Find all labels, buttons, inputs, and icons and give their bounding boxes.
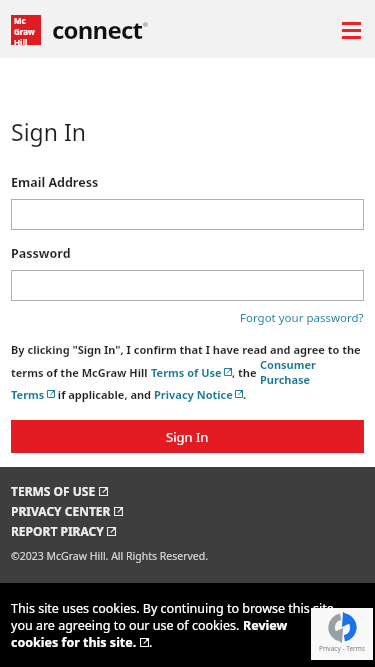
- staticText: Mc: [14, 15, 26, 26]
- button[interactable]: REPORT PIRACY: [11, 521, 116, 541]
- button[interactable]: TERMS OF USE: [11, 481, 108, 501]
- button[interactable]: McGraw Hill Connect home: [11, 13, 148, 46]
- staticText: This site uses cookies. By continuing to…: [11, 600, 334, 617]
- button[interactable]: PRIVACY CENTER: [11, 501, 123, 521]
- staticText: ©2023 McGraw Hill. All Rights Reserved.: [11, 549, 209, 563]
- staticText: cookies for this site.: [11, 634, 137, 651]
- staticText: ®: [143, 21, 148, 29]
- staticText: Privacy - Terms: [319, 644, 365, 653]
- staticText: Review: [243, 617, 288, 634]
- button[interactable]: reCAPTCHA Privacy and Terms: [311, 608, 373, 660]
- button[interactable]: [11, 270, 364, 301]
- staticText: By clicking "Sign In", I confirm that I …: [11, 342, 361, 357]
- button[interactable]: Menu: [338, 17, 364, 43]
- staticText: , the: [232, 365, 260, 380]
- button[interactable]: Privacy Notice: [154, 387, 233, 402]
- staticText: REPORT PIRACY: [11, 523, 104, 539]
- staticText: PRIVACY CENTER: [11, 503, 111, 519]
- button[interactable]: Terms of Use: [151, 365, 222, 380]
- button[interactable]: Consumer Purchase: [260, 357, 364, 387]
- button[interactable]: [11, 199, 364, 230]
- staticText: Graw: [14, 26, 35, 37]
- staticText: terms of the McGraw Hill: [11, 365, 151, 380]
- button[interactable]: Sign In: [11, 420, 364, 453]
- staticText: Sign In: [11, 116, 86, 147]
- staticText: Sign In: [166, 428, 209, 446]
- staticText: Hill: [14, 37, 28, 45]
- staticText: .: [149, 634, 153, 651]
- staticText: .: [243, 387, 247, 402]
- staticText: Consumer Purchase: [260, 357, 364, 387]
- staticText: Terms: [11, 387, 45, 402]
- staticText: Email Address: [11, 174, 99, 191]
- button[interactable]: Forgot your password?: [240, 310, 364, 326]
- staticText: Privacy Notice: [154, 387, 233, 402]
- button[interactable]: cookies for this site.: [11, 634, 137, 651]
- staticText: you are agreeing to our use of cookies.: [11, 617, 243, 634]
- staticText: if applicable, and: [55, 387, 154, 402]
- button[interactable]: Terms: [11, 387, 45, 402]
- staticText: Password: [11, 245, 71, 262]
- staticText: TERMS OF USE: [11, 483, 96, 499]
- staticText: Terms of Use: [151, 365, 222, 380]
- staticText: Forgot your password?: [240, 310, 364, 326]
- staticText: connect: [52, 13, 143, 46]
- button[interactable]: Review: [243, 617, 288, 634]
